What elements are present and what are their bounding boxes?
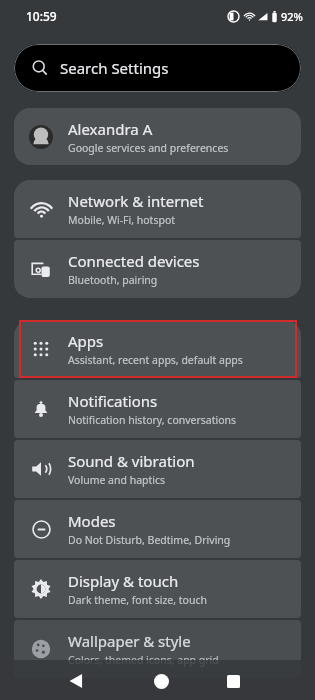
staticText: Notifications [68, 391, 158, 411]
button[interactable]: Wallpaper and style [14, 620, 301, 678]
button[interactable]: Alexandra A [14, 108, 301, 165]
staticText: 92% [281, 9, 303, 24]
other: Display and touch [31, 579, 51, 599]
staticText: Network & internet [68, 191, 204, 211]
staticText: Wallpaper & style [68, 631, 191, 651]
other: Network and internet [31, 199, 52, 220]
staticText: Dark theme, font size, touch [68, 593, 207, 607]
button[interactable]: Modes [14, 500, 301, 558]
staticText: Do Not Disturb, Bedtime, Driving [68, 533, 231, 547]
button[interactable]: Display and touch [14, 560, 301, 618]
other: Sound and vibration [31, 459, 51, 479]
button[interactable]: Home [147, 667, 175, 695]
staticText: Apps [68, 331, 104, 351]
button[interactable]: Connected devices [14, 240, 301, 298]
button[interactable]: Network and internet [14, 180, 301, 238]
button[interactable]: Sound and vibration [14, 440, 301, 498]
staticText: Connected devices [68, 251, 200, 271]
other: Notifications [31, 399, 51, 419]
other: Wallpaper and style [31, 639, 51, 659]
staticText: Modes [68, 511, 116, 531]
staticText: Sound & vibration [68, 451, 195, 471]
staticText: Google services and preferences [68, 141, 229, 155]
staticText: Alexandra A [68, 119, 153, 139]
other: Connected devices [31, 259, 51, 279]
button[interactable]: Apps [14, 320, 301, 378]
staticText: Assistant, recent apps, default apps [68, 353, 243, 367]
staticText: Colors, themed icons, app grid [68, 653, 219, 667]
other: Apps [32, 340, 50, 358]
staticText: Bluetooth, pairing [68, 273, 158, 287]
staticText: Display & touch [68, 571, 179, 591]
button[interactable]: Back [62, 667, 90, 695]
other: Modes [32, 520, 51, 539]
button[interactable]: Notifications [14, 380, 301, 438]
button[interactable]: Search Settings [14, 44, 301, 92]
staticText: Notification history, conversations [68, 413, 237, 427]
staticText: 10:59 [26, 8, 57, 24]
staticText: Volume and haptics [68, 473, 166, 487]
staticText: Search Settings [60, 58, 169, 78]
staticText: Mobile, Wi-Fi, hotspot [68, 213, 176, 227]
button[interactable]: Recent apps [219, 667, 247, 695]
